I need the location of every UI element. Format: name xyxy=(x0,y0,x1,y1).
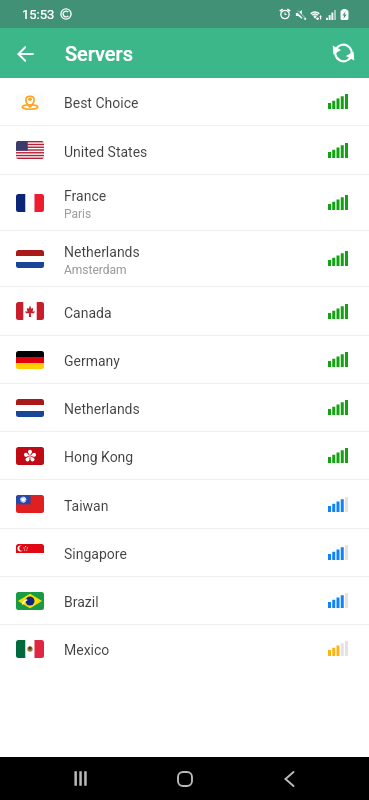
staticText: Germany xyxy=(64,353,120,369)
button[interactable]: Brazil xyxy=(0,577,369,624)
button[interactable]: Germany xyxy=(0,336,369,383)
button[interactable]: Netherlands xyxy=(0,384,369,431)
staticText: Taiwan xyxy=(64,498,109,514)
staticText: Best Choice xyxy=(64,95,139,111)
staticText: Amsterdam xyxy=(64,263,127,277)
staticText: Servers xyxy=(65,42,133,65)
button[interactable]: Recent apps xyxy=(29,757,133,800)
button[interactable]: Mexico xyxy=(0,625,369,672)
staticText: Paris xyxy=(64,207,92,221)
button[interactable]: France xyxy=(0,175,369,230)
button[interactable]: Back xyxy=(237,757,341,800)
staticText: United States xyxy=(64,144,148,160)
button[interactable]: Hong Kong xyxy=(0,432,369,479)
staticText: Brazil xyxy=(64,594,99,610)
staticText: 15:53 xyxy=(22,7,55,22)
staticText: Mexico xyxy=(64,642,110,658)
staticText: Netherlands xyxy=(64,401,140,417)
button[interactable]: Back xyxy=(9,37,42,70)
staticText: Netherlands xyxy=(64,244,140,260)
staticText: Hong Kong xyxy=(64,449,134,465)
button[interactable]: Netherlands xyxy=(0,231,369,286)
staticText: France xyxy=(64,188,107,204)
button[interactable]: Best Choice xyxy=(0,78,369,125)
button[interactable]: Home xyxy=(133,757,237,800)
button[interactable]: Refresh xyxy=(326,36,360,70)
button[interactable]: Canada xyxy=(0,287,369,335)
staticText: Canada xyxy=(64,305,112,321)
staticText: Singapore xyxy=(64,546,127,562)
button[interactable]: United States xyxy=(0,126,369,174)
button[interactable]: Singapore xyxy=(0,529,369,576)
button[interactable]: Taiwan xyxy=(0,480,369,528)
